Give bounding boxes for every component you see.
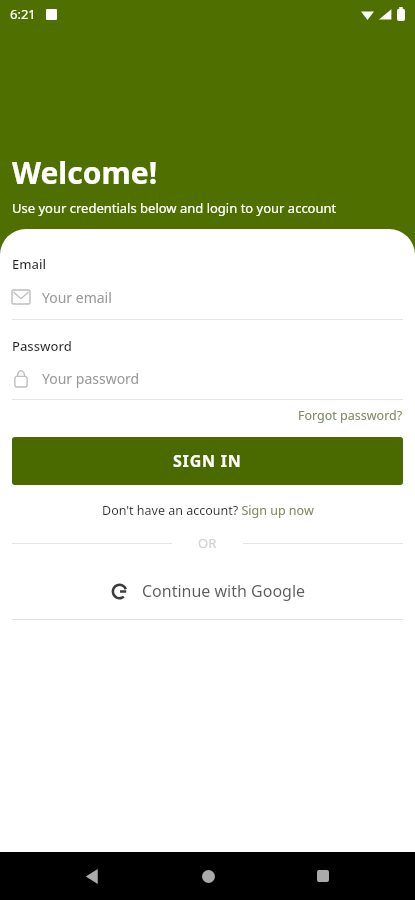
button[interactable]: Forgot password? <box>290 400 403 431</box>
staticText: Continue with Google <box>142 580 306 602</box>
staticText: Email <box>12 255 47 273</box>
button[interactable]: Continue with Google <box>12 574 403 608</box>
staticText: Don't have an account? Sign up now <box>102 502 314 519</box>
staticText: Password <box>12 337 72 355</box>
staticText: OR <box>198 534 217 552</box>
staticText: Use your credentials below and login to … <box>12 199 337 217</box>
button[interactable]: Your password <box>12 365 403 391</box>
staticText: Welcome! <box>12 152 158 193</box>
button[interactable]: Your email <box>12 285 403 309</box>
staticText: Your email <box>42 288 112 307</box>
staticText: Forgot password? <box>298 407 403 424</box>
staticText: Your password <box>42 369 140 388</box>
staticText: 6:21 <box>10 5 36 23</box>
button[interactable]: Home <box>184 852 232 900</box>
button[interactable]: SIGN IN <box>12 437 403 485</box>
button[interactable]: Back <box>68 852 116 900</box>
button[interactable]: Don't have an account? Sign up now <box>96 498 320 523</box>
staticText: SIGN IN <box>173 450 242 472</box>
button[interactable]: Recent apps <box>299 852 347 900</box>
